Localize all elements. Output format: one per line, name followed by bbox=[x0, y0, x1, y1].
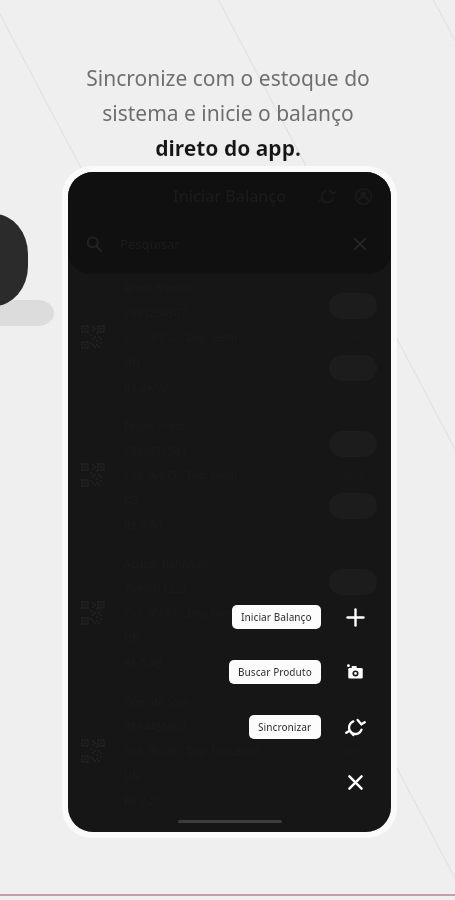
staticText: Buscar Produto bbox=[238, 665, 312, 679]
button[interactable]: Óleo de Soja bbox=[68, 682, 391, 820]
staticText: Cod. 00088 | Dep: Mercearia bbox=[124, 606, 259, 620]
staticText: sistema e inicie o balanço bbox=[102, 99, 354, 128]
staticText: Iniciar Balanço bbox=[173, 185, 287, 207]
button[interactable]: Sincronizar bbox=[249, 705, 377, 749]
button[interactable]: Buscar Produto bbox=[229, 650, 377, 694]
staticText: Sincronize com o estoque do bbox=[86, 64, 370, 93]
button[interactable]: Açúcar Refinado bbox=[68, 544, 391, 682]
staticText: 0/10 bbox=[344, 607, 363, 619]
button[interactable]: Limpar bbox=[347, 231, 373, 257]
button[interactable]: Fechar menu bbox=[333, 760, 377, 804]
staticText: Iniciar Balanço bbox=[241, 610, 312, 624]
staticText: direto do app. bbox=[155, 134, 301, 163]
button[interactable]: Iniciar Balanço bbox=[232, 595, 377, 639]
staticText: Sincronizar bbox=[258, 720, 312, 734]
